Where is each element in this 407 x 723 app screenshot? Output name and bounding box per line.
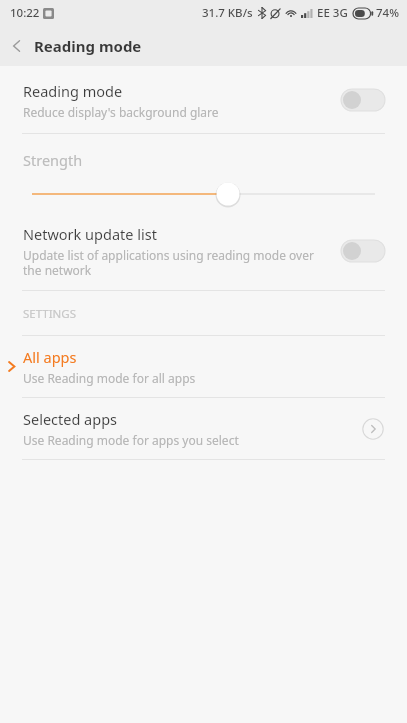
button[interactable]: Back — [0, 29, 34, 63]
staticText: 10:22 — [10, 5, 40, 21]
staticText: EE 3G — [317, 5, 348, 21]
staticText: Reading mode — [23, 81, 123, 101]
button[interactable]: Selected apps — [0, 398, 407, 459]
button[interactable]: All apps — [0, 336, 407, 397]
button[interactable]: Reading mode — [0, 67, 407, 133]
button[interactable]: Strength slider — [0, 178, 407, 210]
button[interactable]: Network update list — [0, 212, 407, 290]
staticText: 31.7 KB/s — [202, 5, 253, 21]
staticText: SETTINGS — [23, 306, 77, 322]
staticText: 74% — [376, 5, 399, 21]
staticText: Reduce display's background glare — [23, 104, 219, 120]
button[interactable]: Open selected apps — [361, 417, 385, 441]
staticText: Network update list — [23, 224, 157, 244]
staticText: Use Reading mode for all apps — [23, 370, 196, 386]
staticText: Update list of applications using readin… — [23, 247, 327, 278]
button[interactable] — [341, 87, 387, 113]
staticText: Reading mode — [34, 36, 142, 56]
button[interactable] — [341, 238, 387, 264]
staticText: Strength — [23, 150, 83, 170]
staticText: Selected apps — [23, 409, 118, 429]
staticText: All apps — [23, 347, 77, 367]
staticText: Use Reading mode for apps you select — [23, 432, 239, 448]
